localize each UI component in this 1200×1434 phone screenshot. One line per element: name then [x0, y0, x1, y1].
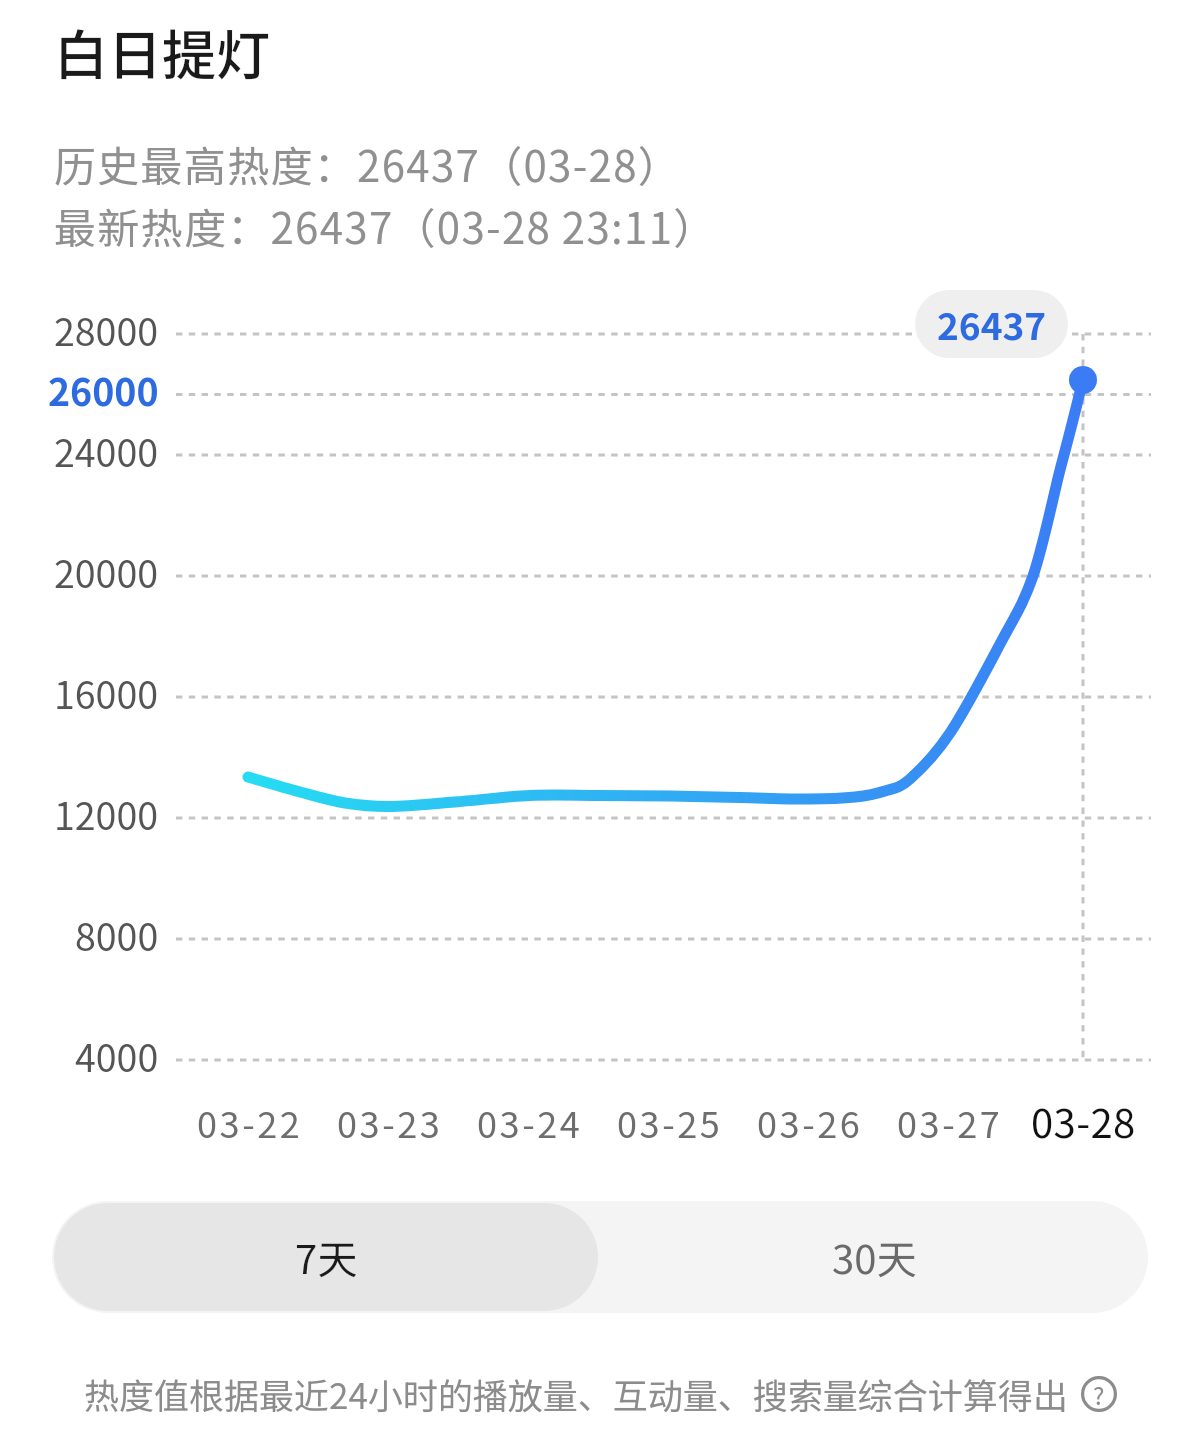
button[interactable]: 7天	[54, 1203, 598, 1311]
staticText: 24000	[54, 423, 159, 477]
staticText: 03-24	[477, 1096, 583, 1148]
staticText: 20000	[54, 544, 159, 598]
staticText: 03-22	[197, 1096, 303, 1148]
staticText: 7天	[295, 1228, 358, 1286]
staticText: ?	[1093, 1377, 1105, 1412]
staticText: 8000	[75, 907, 159, 961]
staticText: 4000	[75, 1028, 159, 1082]
staticText: 30天	[832, 1228, 917, 1286]
staticText: 12000	[54, 786, 159, 840]
staticText: 03-26	[757, 1096, 863, 1148]
staticText: 28000	[54, 302, 159, 356]
staticText: 热度值根据最近24小时的播放量、互动量、搜索量综合计算得出	[84, 1368, 1068, 1419]
staticText: 最新热度：26437（03-28 23:11）	[54, 195, 717, 256]
staticText: 03-28	[1031, 1092, 1136, 1150]
button[interactable]: Help	[1081, 1376, 1117, 1412]
staticText: 26000	[48, 362, 159, 416]
staticText: 白日提灯	[54, 12, 270, 90]
button[interactable]: 30天	[600, 1201, 1148, 1313]
staticText: 历史最高热度：26437（03-28）	[54, 133, 682, 194]
staticText: 03-25	[617, 1096, 723, 1148]
staticText: 03-27	[897, 1096, 1003, 1148]
staticText: 03-23	[337, 1096, 443, 1148]
staticText: 26437	[937, 297, 1047, 351]
staticText: 16000	[54, 665, 159, 719]
